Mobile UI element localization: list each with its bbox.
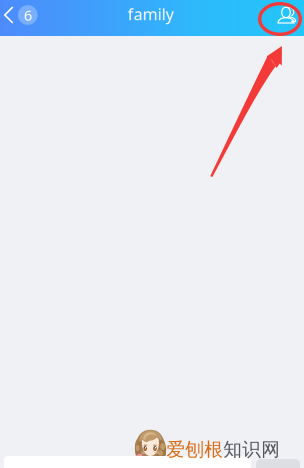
staticText: family xyxy=(127,3,173,25)
staticText: 6 xyxy=(24,5,32,25)
button[interactable]: Back xyxy=(0,0,44,31)
button[interactable]: Contacts xyxy=(269,0,304,36)
staticText: 爱刨根 xyxy=(166,438,223,461)
staticText: 知识网 xyxy=(223,438,280,461)
